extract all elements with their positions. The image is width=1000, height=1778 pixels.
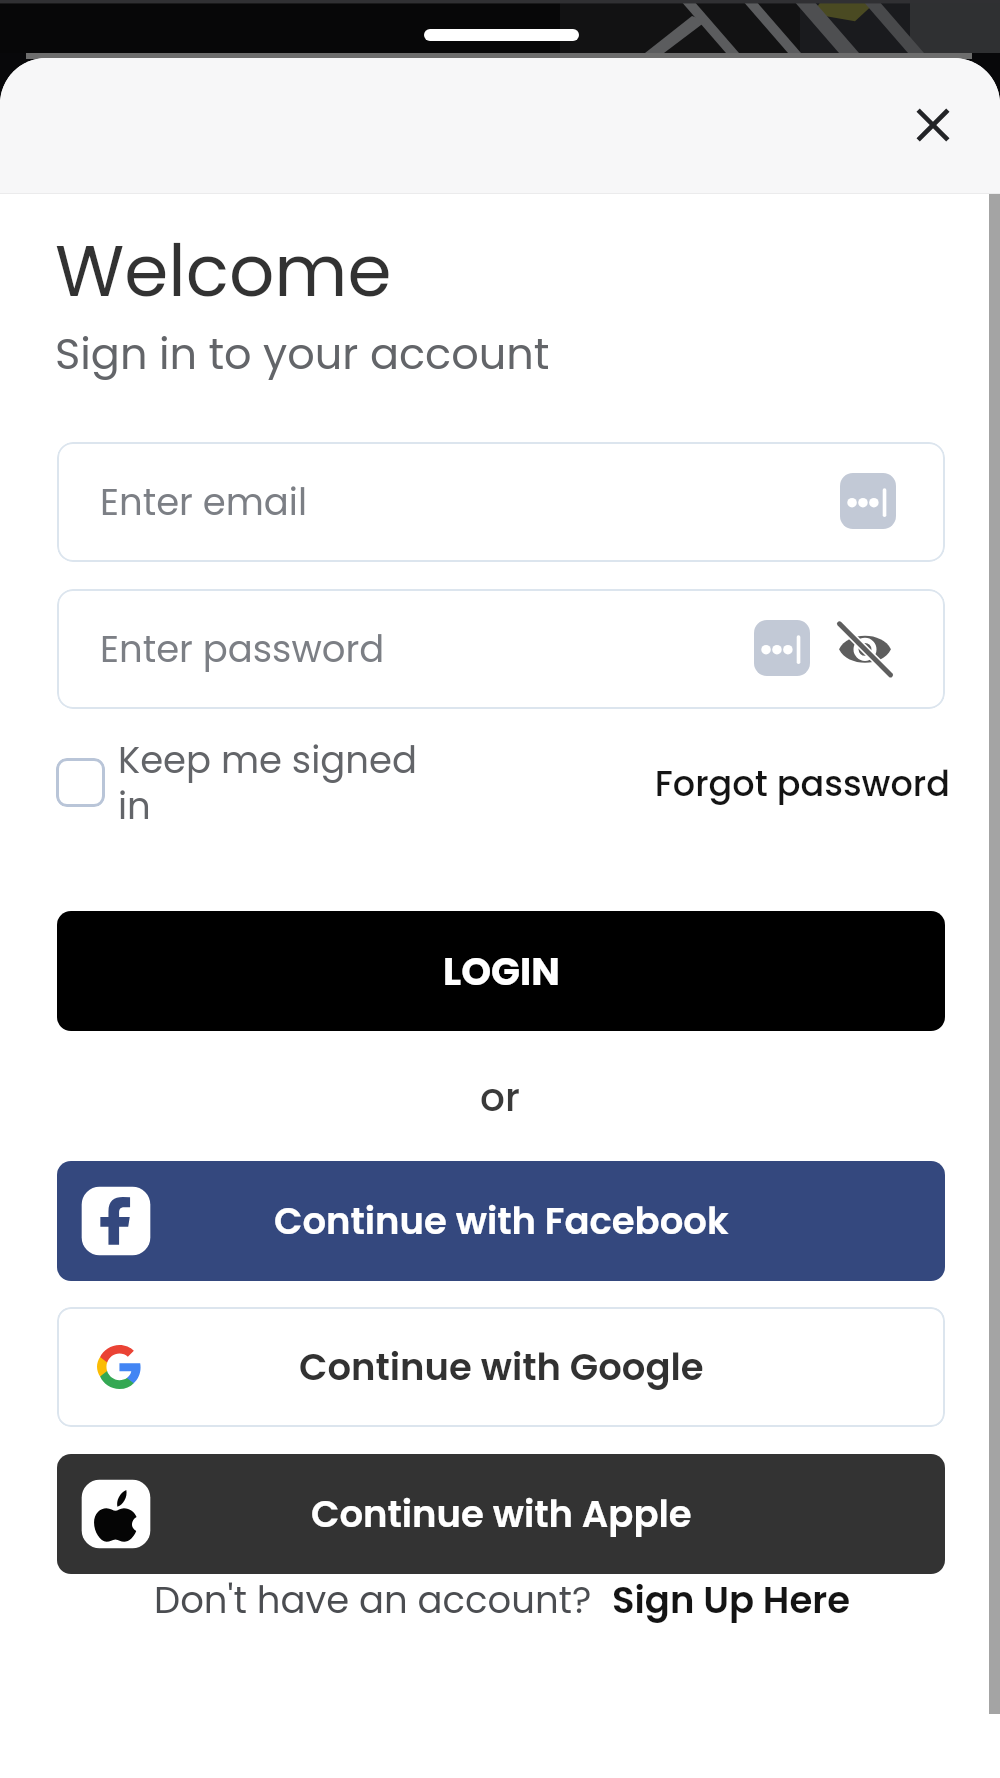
staticText: Welcome [55,221,392,320]
button[interactable]: Sign Up Here [612,1574,850,1626]
staticText: Continue with Facebook [274,1195,729,1247]
button[interactable]: Continue with Facebook [57,1161,945,1281]
staticText: Forgot password [550,759,950,808]
staticText: Enter password [100,623,385,675]
button[interactable]: Keep me signed in [56,758,105,807]
button[interactable]: Keep me signed in [118,734,418,832]
staticText: Sign Up Here [612,1574,850,1626]
staticText: Keep me signed in [118,734,418,832]
button[interactable]: Enter password [57,589,945,709]
staticText: Don't have an account? [154,1574,592,1626]
button[interactable]: Show password [829,613,901,685]
staticText: or [480,1070,520,1125]
button[interactable]: Close [895,87,971,163]
staticText: Enter email [100,476,308,528]
staticText: LOGIN [443,945,560,998]
staticText: Continue with Google [299,1341,704,1393]
staticText: Continue with Apple [311,1488,692,1540]
button[interactable]: Continue with Apple [57,1454,945,1574]
button[interactable]: Continue with Google [57,1307,945,1427]
button[interactable]: Enter email [57,442,945,562]
button[interactable]: LOGIN [57,911,945,1031]
button[interactable]: Forgot password [550,759,950,808]
staticText: Sign in to your account [55,324,550,384]
